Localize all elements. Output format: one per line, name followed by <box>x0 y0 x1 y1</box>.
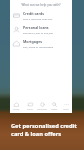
staticText: card & loan offers <box>11 130 62 138</box>
button[interactable]: Credit cards <box>10 8 72 22</box>
button[interactable]: Home <box>10 99 23 113</box>
button[interactable]: Payments <box>36 99 48 113</box>
staticText: What can we help you with? <box>10 3 72 7</box>
button[interactable]: Personal loans <box>10 22 72 36</box>
button[interactable]: Offers <box>48 99 60 113</box>
staticText: Cards <box>27 108 33 111</box>
staticText: Borrow £1,000 to £25,000 <box>23 31 54 34</box>
staticText: Home <box>13 108 20 111</box>
staticText: Personal loans <box>23 25 49 30</box>
staticText: Buy, move or remortgage <box>23 45 54 48</box>
staticText: Payments <box>37 108 48 111</box>
staticText: More <box>63 108 69 111</box>
staticText: Get personalised credit <box>11 122 77 130</box>
staticText: Mortgages <box>23 39 43 44</box>
staticText: Find a card that suits you <box>23 17 53 20</box>
button[interactable]: More <box>60 99 72 113</box>
button[interactable]: Mortgages <box>10 36 72 50</box>
button[interactable]: Cards <box>23 99 36 113</box>
staticText: Credit cards <box>23 11 44 16</box>
staticText: Offers <box>51 108 58 111</box>
